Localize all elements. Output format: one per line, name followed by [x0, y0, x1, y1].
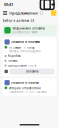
- staticText: 12: [39, 10, 43, 16]
- staticText: Цена доставки 199 ₽: [8, 64, 37, 67]
- staticText: Посылки и платежи: [11, 40, 40, 44]
- staticText: Москва, Ленинградский: [9, 49, 41, 53]
- staticText: От Заказы · 1 товар: [9, 46, 35, 49]
- staticText: Посылки и письма: [11, 81, 39, 84]
- button[interactable]: Оплатить: [9, 68, 54, 74]
- staticText: доставку при заказе: [12, 30, 37, 34]
- staticText: Коробка: [8, 54, 20, 58]
- staticText: Выбор и доставка 24: [2, 19, 34, 22]
- staticText: Письмо: [8, 59, 18, 62]
- staticText: Оплатить: [26, 70, 38, 73]
- button[interactable]: Profile: [51, 10, 56, 16]
- staticText: Предложения: [9, 10, 37, 16]
- button[interactable]: Теперь можно оплатить: [2, 25, 56, 36]
- staticText: Отделение 121601 Москва: [9, 90, 46, 94]
- staticText: 09:41: [4, 2, 13, 7]
- button[interactable]: Menu: [2, 10, 8, 16]
- staticText: История отправлений: [9, 86, 41, 90]
- staticText: Теперь можно оплатить: [12, 27, 44, 30]
